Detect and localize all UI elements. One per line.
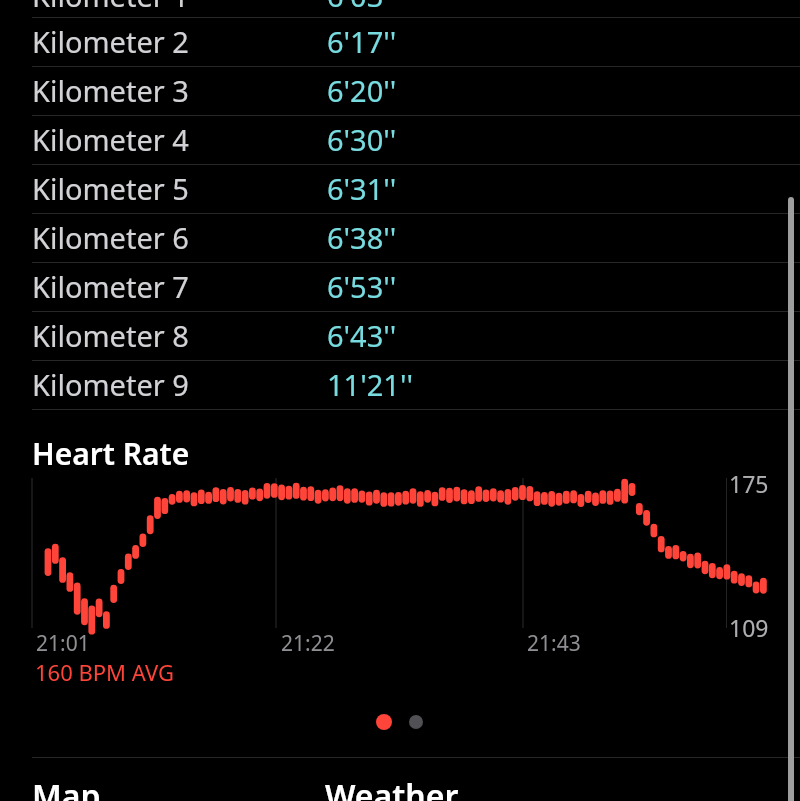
button[interactable] xyxy=(409,715,423,729)
staticText: Heart Rate xyxy=(32,433,190,474)
staticText: 6'43'' xyxy=(327,316,397,355)
staticText: Kilometer 4 xyxy=(32,120,189,159)
button[interactable]: Kilometer 9 xyxy=(0,360,800,409)
staticText: Kilometer 3 xyxy=(32,71,189,110)
staticText: Kilometer 9 xyxy=(32,365,189,404)
staticText: 175 xyxy=(729,468,769,499)
button[interactable]: Kilometer 2 xyxy=(0,17,800,66)
staticText: 6'03'' xyxy=(327,0,397,15)
staticText: 6'31'' xyxy=(327,169,397,208)
staticText: Map xyxy=(32,774,101,801)
staticText: 21:22 xyxy=(281,629,335,658)
staticText: Kilometer 6 xyxy=(32,218,189,257)
staticText: Kilometer 7 xyxy=(32,267,189,306)
button[interactable]: Kilometer 1 xyxy=(0,0,800,20)
staticText: Weather xyxy=(325,774,459,801)
staticText: Kilometer 5 xyxy=(32,169,189,208)
staticText: 6'53'' xyxy=(327,267,397,306)
staticText: 21:01 xyxy=(36,629,90,658)
staticText: 6'38'' xyxy=(327,218,397,257)
button[interactable]: Kilometer 6 xyxy=(0,213,800,262)
button[interactable]: Kilometer 7 xyxy=(0,262,800,311)
staticText: 11'21'' xyxy=(327,365,413,404)
button[interactable]: Kilometer 8 xyxy=(0,311,800,360)
staticText: 160 BPM AVG xyxy=(35,657,174,687)
staticText: Kilometer 1 xyxy=(32,0,189,15)
button[interactable]: Kilometer 4 xyxy=(0,115,800,164)
button[interactable] xyxy=(376,714,392,730)
button[interactable]: Kilometer 3 xyxy=(0,66,800,115)
staticText: 21:43 xyxy=(527,629,581,658)
staticText: Kilometer 2 xyxy=(32,22,189,61)
staticText: Kilometer 8 xyxy=(32,316,189,355)
staticText: 6'30'' xyxy=(327,120,397,159)
button[interactable]: Kilometer 5 xyxy=(0,164,800,213)
staticText: 109 xyxy=(729,612,769,643)
staticText: 6'20'' xyxy=(327,71,397,110)
staticText: 6'17'' xyxy=(327,22,397,61)
